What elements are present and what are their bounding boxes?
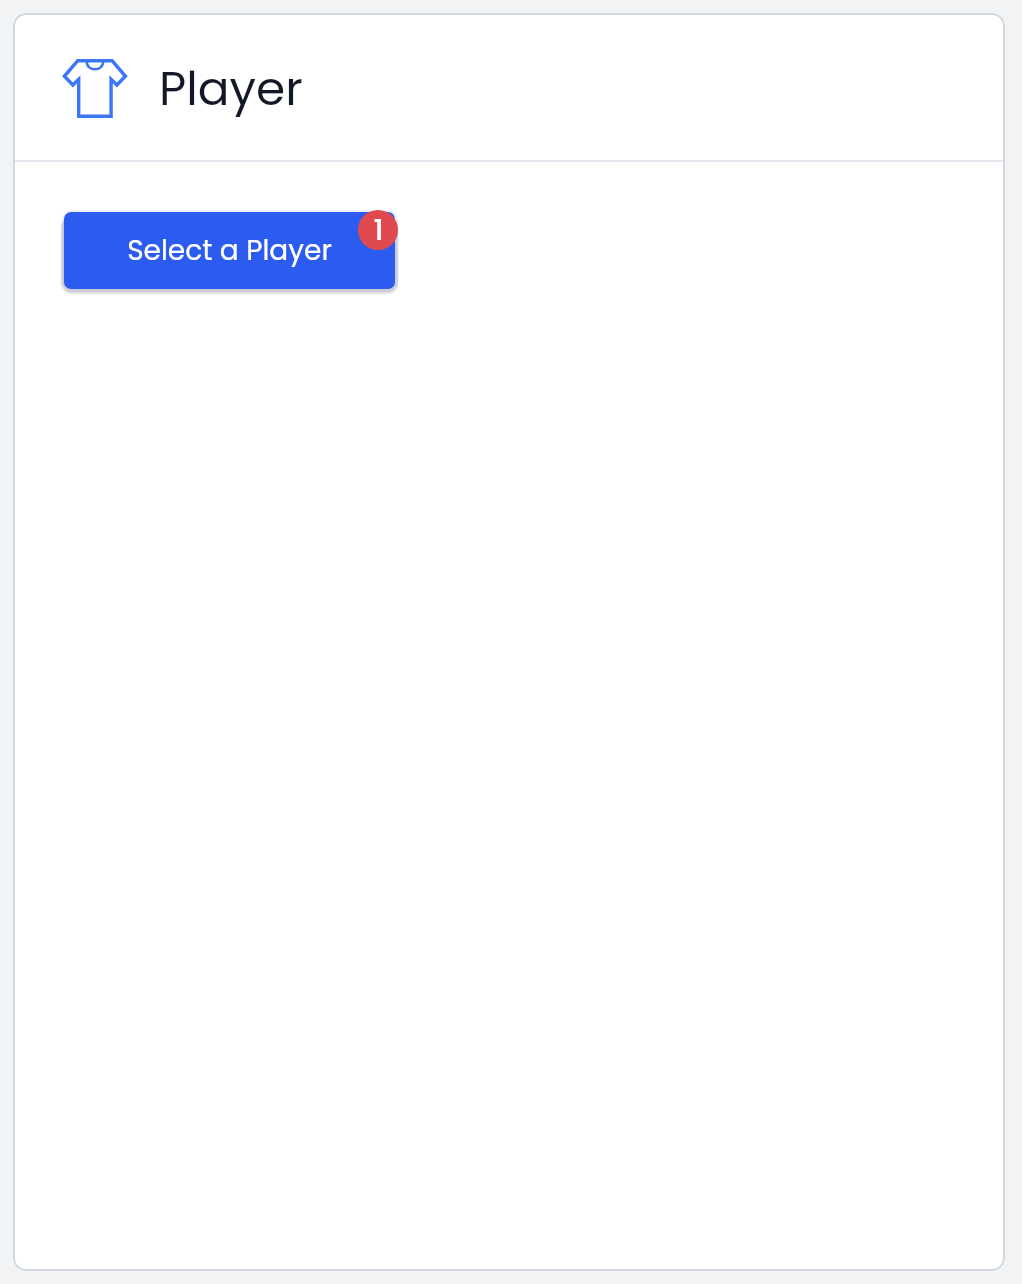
staticText: Select a Player	[127, 231, 332, 270]
staticText: Player	[159, 56, 303, 122]
other: Player jersey	[62, 59, 128, 118]
button[interactable]: Select a Player	[64, 212, 395, 289]
staticText: 1	[373, 210, 384, 250]
